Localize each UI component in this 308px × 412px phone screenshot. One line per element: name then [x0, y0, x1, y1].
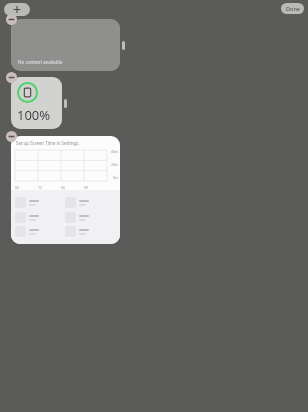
staticText: 100%	[17, 106, 51, 124]
button[interactable]	[65, 197, 116, 208]
staticText: 40m	[111, 149, 119, 154]
button[interactable]: Remove widget	[6, 14, 17, 25]
staticText: 12	[38, 185, 61, 190]
button[interactable]	[65, 226, 116, 237]
other: Resize widget	[122, 41, 125, 50]
staticText: No content available	[18, 59, 63, 65]
button[interactable]: Done	[281, 3, 304, 14]
button[interactable]: No content available	[11, 19, 120, 71]
button[interactable]	[15, 226, 65, 237]
button[interactable]: Remove widget	[6, 131, 17, 142]
staticText: Set up Screen Time in Settings.	[16, 140, 80, 146]
staticText: 20m	[111, 162, 119, 167]
staticText: 00	[15, 185, 38, 190]
staticText: Done	[286, 5, 300, 12]
staticText: 06	[61, 185, 84, 190]
button[interactable]	[65, 212, 116, 223]
button[interactable]: Remove widget	[6, 72, 17, 83]
button[interactable]: Add widget	[4, 3, 30, 16]
staticText: 00	[84, 185, 107, 190]
other: Resize widget	[64, 99, 67, 108]
staticText: 0m	[113, 175, 119, 180]
button[interactable]	[15, 197, 65, 208]
button[interactable]: 100%	[11, 77, 62, 129]
button[interactable]: Set up Screen Time in Settings.	[11, 136, 120, 244]
button[interactable]	[15, 212, 65, 223]
